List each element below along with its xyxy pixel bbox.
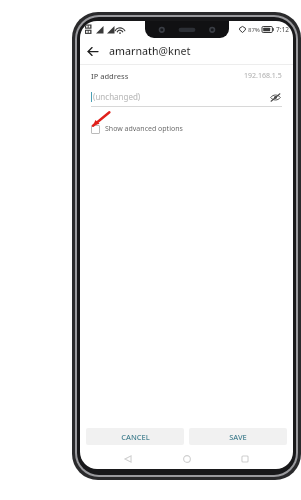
button[interactable]: Show password [268,90,282,104]
staticText: amarnath@knet [109,44,191,58]
staticText: CANCEL [121,432,150,442]
button[interactable]: Home [177,449,197,469]
staticText: 87% [248,26,260,34]
button[interactable]: Back [80,39,104,63]
button[interactable]: Back [118,449,138,469]
staticText: 192.168.1.5 [244,71,282,81]
button[interactable]: Recents [235,449,255,469]
staticText: SAVE [229,432,247,442]
button[interactable]: Show advanced options [91,124,183,134]
staticText: 7:12 [276,25,289,34]
staticText: IP address [91,71,129,81]
staticText: Show advanced options [105,124,183,134]
button[interactable]: CANCEL [86,428,184,445]
button[interactable]: SAVE [189,428,287,445]
staticText: (unchanged) [93,91,141,102]
